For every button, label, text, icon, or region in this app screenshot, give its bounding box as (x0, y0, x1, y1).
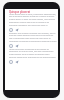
button[interactable]: Share (15, 44, 19, 48)
staticText: Quisque placerat (9, 10, 31, 13)
button[interactable]: Share (15, 28, 19, 32)
button[interactable]: Listen (9, 60, 13, 64)
button[interactable]: Share (15, 60, 19, 64)
staticText: Nemo enim ipsam voluptatem quia voluptas… (9, 48, 57, 59)
staticText: Excepteur sint occaecat cupidatat non pr… (9, 32, 57, 43)
button[interactable]: Listen (9, 28, 13, 32)
button[interactable]: Listen (9, 44, 13, 48)
staticText: Lorem ipsum dolor sit amet, consectetur … (9, 13, 57, 27)
